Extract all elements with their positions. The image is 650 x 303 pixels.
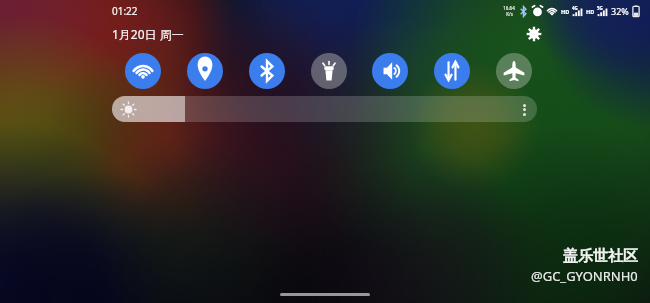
staticText: 5G — [597, 5, 603, 11]
staticText: HD — [561, 8, 570, 15]
staticText: K/s — [506, 11, 513, 17]
button[interactable]: Mobile data — [434, 53, 470, 89]
button[interactable]: Wi-Fi — [125, 53, 161, 89]
staticText: @GC_GYONRNH0 — [531, 267, 638, 285]
staticText: 16.64 — [503, 5, 515, 11]
staticText: 4G — [572, 5, 578, 11]
button[interactable]: Airplane mode — [496, 53, 532, 89]
button[interactable]: Sound — [372, 53, 408, 89]
staticText: HD — [586, 8, 595, 15]
staticText: 01:22 — [112, 4, 138, 18]
staticText: 盖乐世社区 — [563, 247, 638, 266]
button[interactable]: Brightness — [112, 96, 537, 122]
staticText: 32% — [611, 5, 629, 17]
button[interactable]: Location — [187, 53, 223, 89]
button[interactable]: Flashlight — [311, 53, 347, 89]
button[interactable]: Settings — [521, 22, 547, 46]
button[interactable]: More brightness settings — [522, 102, 526, 117]
staticText: 1月20日 周一 — [112, 26, 184, 42]
button[interactable]: Bluetooth — [249, 53, 285, 89]
